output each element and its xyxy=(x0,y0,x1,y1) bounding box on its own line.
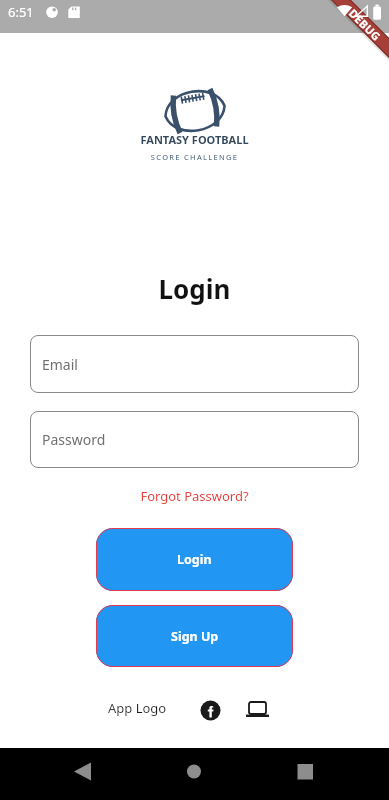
button[interactable] xyxy=(246,701,269,718)
staticText: Password xyxy=(42,430,106,449)
button[interactable]: Sign Up xyxy=(96,605,293,667)
button[interactable] xyxy=(200,700,221,721)
staticText: Login xyxy=(0,271,389,306)
staticText: Login xyxy=(177,551,212,568)
staticText: FANTASY FOOTBALL xyxy=(0,132,389,147)
staticText: SCORE CHALLENGE xyxy=(0,152,389,162)
staticText: 6:51 xyxy=(8,3,34,21)
staticText: App Logo xyxy=(108,699,167,717)
staticText: DEBUG xyxy=(347,6,384,43)
button[interactable]: Login xyxy=(96,528,293,591)
staticText: Sign Up xyxy=(171,628,219,645)
button[interactable]: Password xyxy=(30,411,359,468)
button[interactable]: Forgot Password? xyxy=(0,487,389,505)
button[interactable]: Email xyxy=(30,335,359,393)
staticText: Email xyxy=(42,355,78,374)
